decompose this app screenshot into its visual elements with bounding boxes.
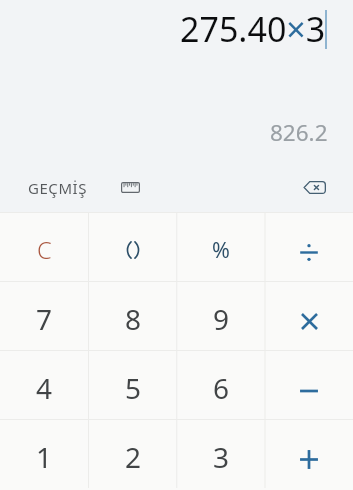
staticText: 5	[125, 369, 142, 407]
button[interactable]	[89, 212, 177, 281]
staticText: 7	[36, 300, 53, 338]
button[interactable]: 4	[0, 350, 89, 419]
button[interactable]: 7	[0, 281, 89, 350]
staticText: GEÇMİŞ	[28, 178, 87, 198]
staticText: %	[212, 235, 230, 264]
button[interactable]: 2	[89, 419, 177, 488]
staticText: 3	[213, 438, 230, 476]
staticText: 8	[125, 300, 142, 338]
staticText: 9	[213, 300, 230, 338]
button[interactable]: 1	[0, 419, 89, 488]
button[interactable]	[265, 212, 353, 281]
button[interactable]: %	[177, 212, 265, 281]
staticText: 826.2	[270, 117, 328, 148]
staticText: 275.40×3	[180, 6, 326, 52]
staticText: 1	[36, 438, 53, 476]
staticText: 4	[36, 369, 53, 407]
button[interactable]: GEÇMİŞ	[14, 170, 101, 206]
staticText: 2	[125, 438, 142, 476]
staticText: C	[37, 234, 52, 266]
button[interactable]: 6	[177, 350, 265, 419]
button[interactable]: Unit converter	[109, 167, 151, 209]
button[interactable]: 9	[177, 281, 265, 350]
button[interactable]	[265, 419, 353, 488]
button[interactable]: 8	[89, 281, 177, 350]
staticText: 6	[213, 369, 230, 407]
button[interactable]	[265, 281, 353, 350]
button[interactable]	[265, 350, 353, 419]
button[interactable]: C	[0, 212, 89, 281]
button[interactable]: 5	[89, 350, 177, 419]
button[interactable]: Backspace	[293, 167, 335, 209]
button[interactable]: 3	[177, 419, 265, 488]
